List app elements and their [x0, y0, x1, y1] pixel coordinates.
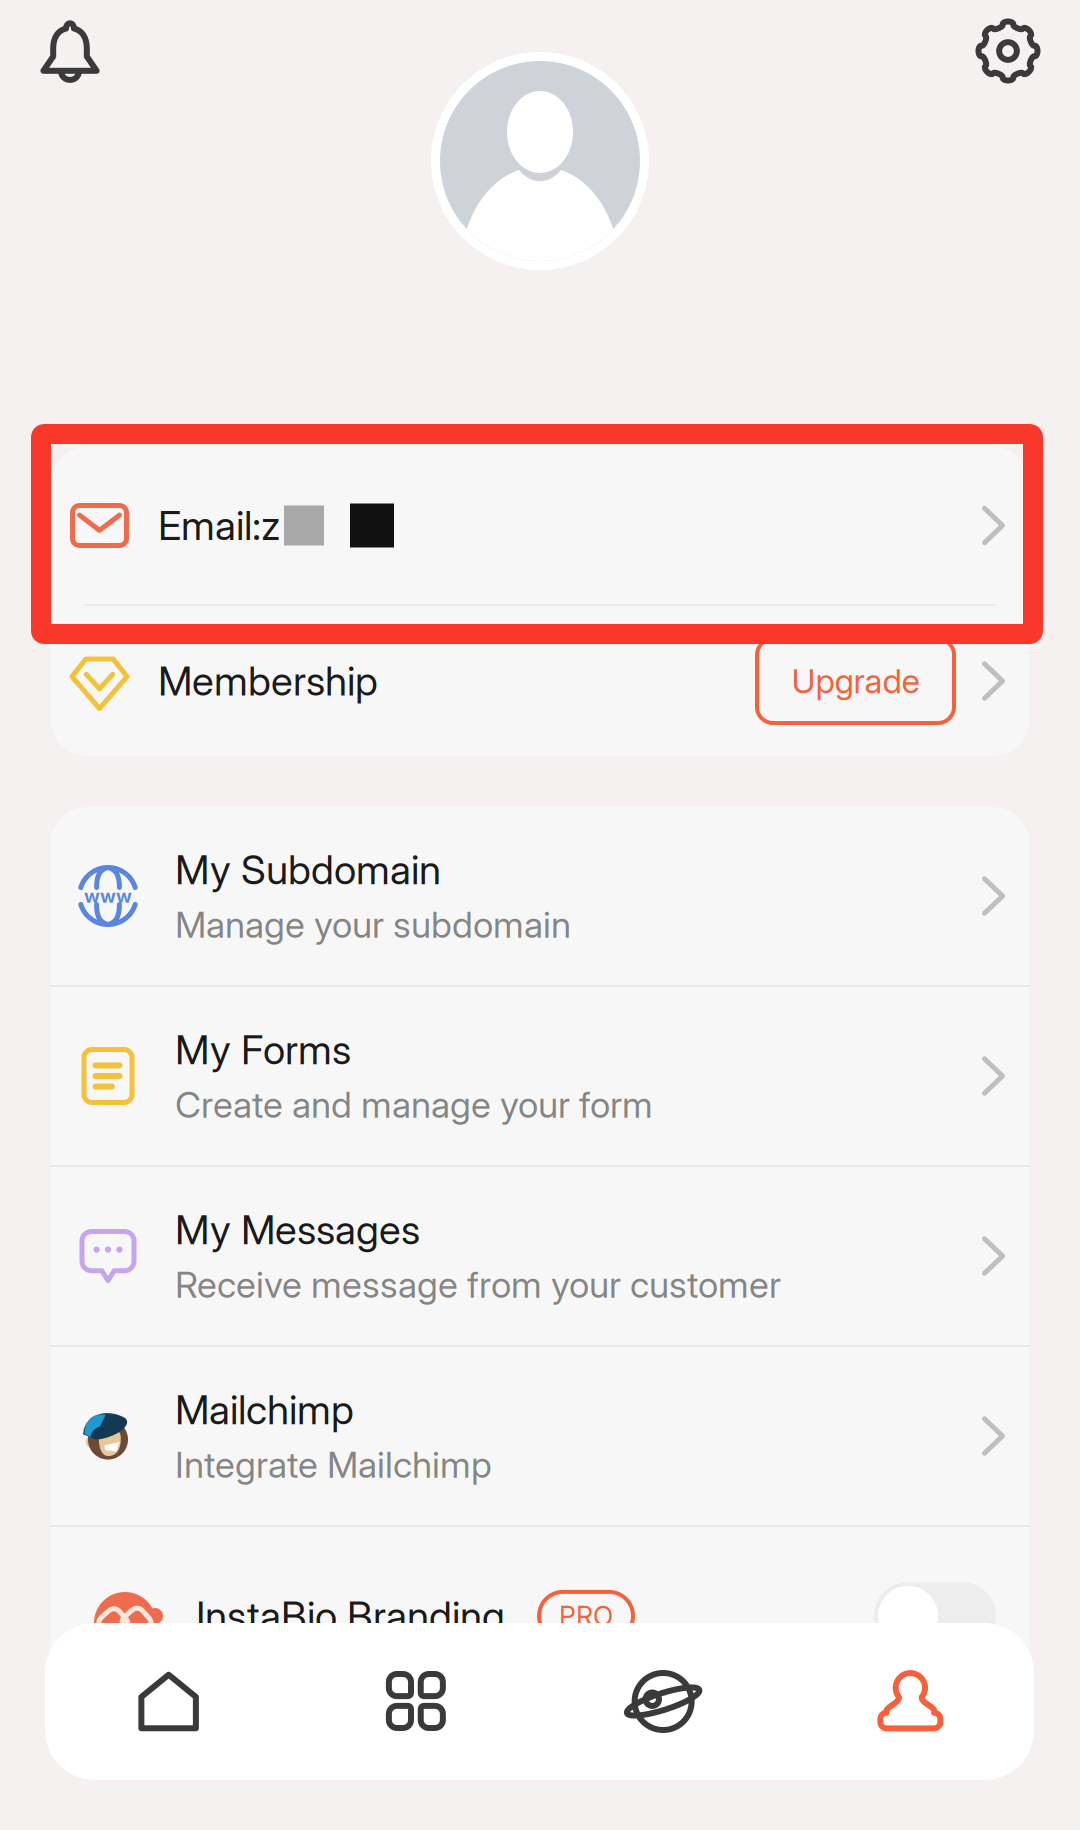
- button[interactable]: Membership: [50, 606, 1030, 756]
- button[interactable]: Explore: [539, 1623, 787, 1780]
- staticText: My Forms: [175, 1025, 351, 1074]
- staticText: www: [84, 885, 132, 907]
- button[interactable]: www: [50, 807, 1030, 985]
- staticText: Integrate Mailchimp: [175, 1443, 492, 1486]
- staticText: Email:z: [158, 501, 280, 550]
- staticText: My Messages: [175, 1205, 420, 1254]
- button[interactable]: InstaBio Branding: [50, 1527, 1030, 1705]
- staticText: Upgrade: [791, 661, 919, 701]
- button[interactable]: My Forms: [50, 987, 1030, 1165]
- staticText: InstaBio Branding: [196, 1592, 505, 1640]
- button[interactable]: Home: [45, 1623, 292, 1780]
- staticText: My Subdomain: [175, 845, 441, 894]
- button[interactable]: Settings: [954, 1, 1080, 100]
- staticText: PRO: [559, 1600, 613, 1632]
- button[interactable]: Notifications: [0, 1, 122, 101]
- staticText: Manage your subdomain: [175, 903, 571, 946]
- staticText: Membership: [158, 657, 378, 705]
- button[interactable]: My Messages: [50, 1167, 1030, 1345]
- button[interactable]: Email:z: [50, 447, 1030, 604]
- staticText: Receive message from your customer: [175, 1263, 781, 1306]
- staticText: Create and manage your form: [175, 1083, 653, 1126]
- button[interactable]: Mailchimp: [50, 1347, 1030, 1525]
- button[interactable]: Profile: [787, 1623, 1034, 1780]
- staticText: Mailchimp: [175, 1385, 354, 1434]
- button[interactable]: Apps: [292, 1623, 539, 1780]
